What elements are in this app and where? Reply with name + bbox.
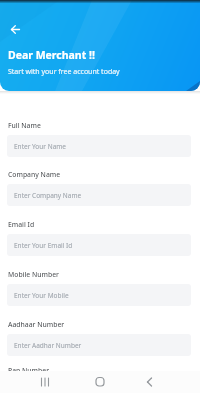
staticText: Start with your free account today: [8, 67, 120, 77]
staticText: Enter Aadhar Number: [14, 341, 82, 350]
staticText: Aadhaar Number: [8, 320, 65, 329]
staticText: Full Name: [8, 121, 41, 130]
staticText: Enter Your Email Id: [14, 241, 73, 250]
button[interactable]: [88, 371, 112, 393]
button[interactable]: Enter Company Name: [7, 184, 191, 206]
button[interactable]: Enter Your Email Id: [7, 234, 191, 256]
staticText: Pan Number: [8, 366, 50, 375]
button[interactable]: Enter Your Mobile: [7, 284, 191, 306]
button[interactable]: Enter Pan Number: [7, 380, 191, 393]
button[interactable]: Enter Your Name: [7, 135, 191, 157]
staticText: Mobile Number: [8, 270, 59, 279]
button[interactable]: [6, 22, 24, 37]
button[interactable]: Enter Aadhar Number: [7, 334, 191, 356]
staticText: Dear Merchant !!: [8, 48, 95, 62]
staticText: Company Name: [8, 170, 61, 179]
staticText: Email Id: [8, 220, 35, 229]
button[interactable]: [137, 371, 161, 393]
staticText: Enter Your Name: [14, 142, 67, 151]
staticText: Enter Your Mobile: [14, 291, 69, 300]
button[interactable]: [33, 371, 57, 393]
staticText: Enter Company Name: [14, 191, 82, 200]
